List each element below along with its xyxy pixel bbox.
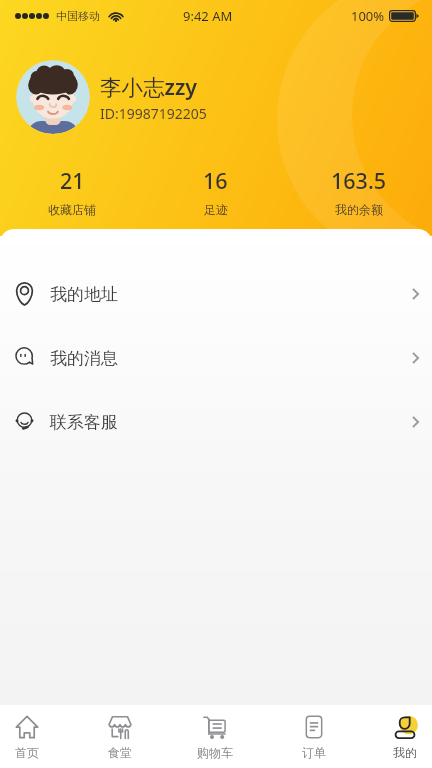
staticText: 中国移动 <box>56 9 100 23</box>
button[interactable]: 我的消息 <box>0 326 432 390</box>
staticText: 9:42 AM <box>183 7 233 25</box>
button[interactable]: 订单 <box>283 705 345 768</box>
button[interactable]: 21 <box>0 166 144 217</box>
staticText: 食堂 <box>108 745 132 760</box>
staticText: 收藏店铺 <box>48 202 96 217</box>
button[interactable]: 我的地址 <box>0 262 432 326</box>
button[interactable]: 联系客服 <box>0 390 432 454</box>
button[interactable]: 163.5 <box>287 166 430 217</box>
button[interactable]: 首页 <box>0 705 58 768</box>
button[interactable]: 我的 <box>374 705 432 768</box>
staticText: 163.5 <box>331 166 387 195</box>
staticText: 16 <box>203 166 228 195</box>
staticText: 首页 <box>15 745 39 760</box>
staticText: 我的余额 <box>335 202 383 217</box>
button[interactable]: 购物车 <box>184 705 246 768</box>
staticText: 我的消息 <box>50 348 118 369</box>
staticText: 足迹 <box>204 202 228 217</box>
staticText: 我的地址 <box>50 284 118 305</box>
staticText: 21 <box>60 166 85 195</box>
staticText: 100% <box>351 7 385 25</box>
button[interactable]: 16 <box>144 166 287 217</box>
button[interactable]: 食堂 <box>89 705 151 768</box>
staticText: 订单 <box>302 745 326 760</box>
staticText: 购物车 <box>197 745 233 760</box>
staticText: 联系客服 <box>50 412 118 433</box>
staticText: ID:19987192205 <box>100 104 207 123</box>
staticText: 我的 <box>393 745 417 760</box>
staticText: 李小志zzy <box>100 72 198 101</box>
